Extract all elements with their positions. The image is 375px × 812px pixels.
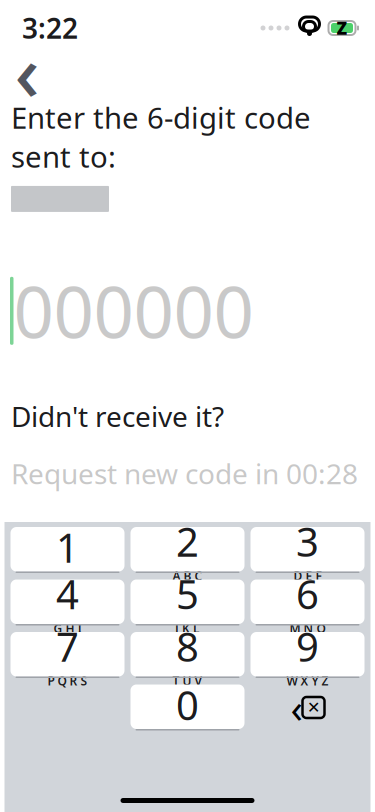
button[interactable]: Back [2,48,52,94]
button[interactable]: 2 [130,527,244,573]
staticText: 3 [296,515,319,568]
button[interactable]: 5 [130,579,244,625]
button[interactable]: 7 [10,632,124,678]
button[interactable]: 6 [250,579,364,625]
button[interactable]: 8 [130,632,244,678]
staticText: 2 [176,515,199,568]
staticText: 1 [56,521,79,574]
staticText: ‹ [290,681,302,734]
staticText: Enter the 6-digit code sent to: [11,98,311,176]
button[interactable]: 9 [250,632,364,678]
staticText: 000000 [13,264,253,358]
staticText: M N O [289,620,325,636]
staticText: 8 [176,620,199,673]
staticText: 9 [296,620,319,673]
staticText: 3:22 [22,9,78,47]
button[interactable]: Request new code in 00:28 [0,435,375,500]
staticText: 5 [176,567,199,620]
staticText: 7 [56,620,79,673]
staticText: Z [336,16,347,39]
staticText: J K L [175,620,200,636]
staticText: 4 [56,567,79,620]
staticText: Request new code in 00:28 [11,455,358,492]
button[interactable]: 1 [10,527,124,573]
staticText: G H I [53,620,81,636]
staticText: A B C [172,568,202,584]
staticText: T U V [172,673,202,689]
button[interactable]: 3 [250,527,364,573]
button[interactable]: Delete [250,684,364,730]
staticText: 0 [176,678,199,731]
button[interactable]: 0 [130,684,244,730]
staticText: D E F [293,568,321,584]
button[interactable]: 4 [10,579,124,625]
staticText: ✕ [307,698,320,717]
staticText: 6 [296,567,319,620]
staticText: ‹ [14,20,39,122]
staticText: Didn't receive it? [11,398,224,435]
staticText: W X Y Z [286,673,328,689]
staticText: P Q R S [47,673,87,689]
